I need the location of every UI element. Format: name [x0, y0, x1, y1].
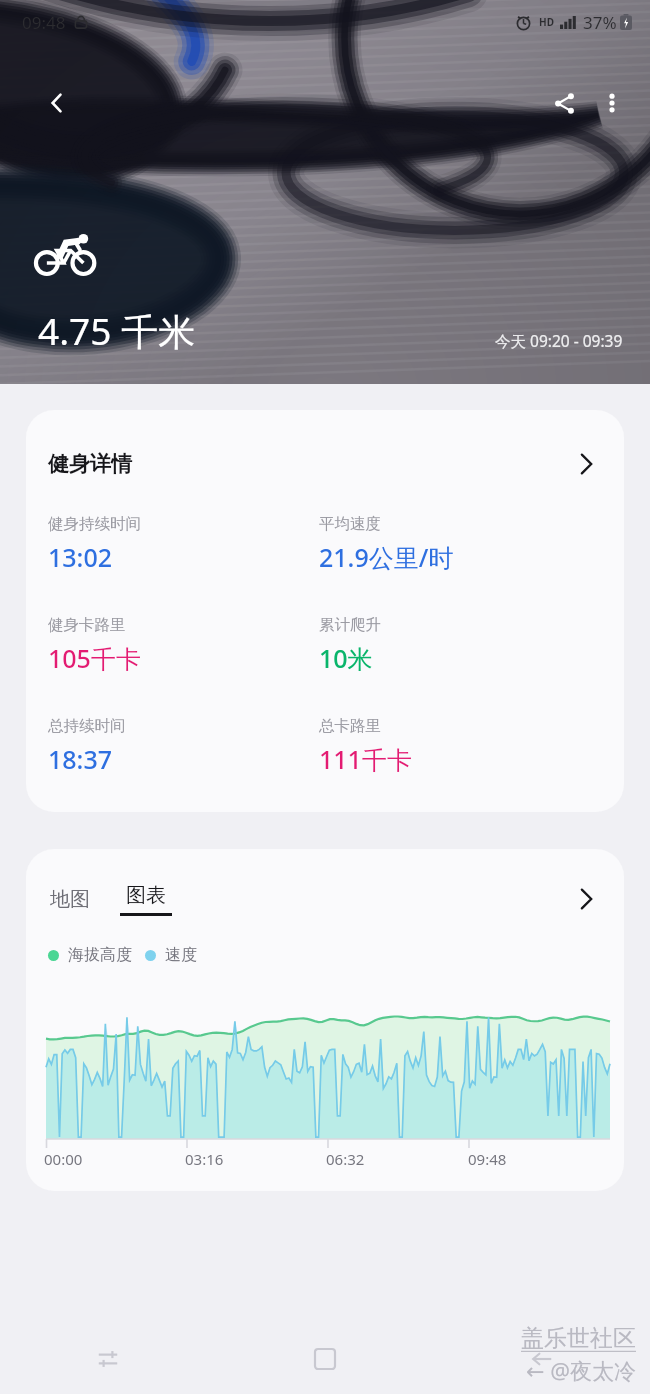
staticText: 健身卡路里	[48, 615, 126, 635]
staticText: 105千卡	[48, 641, 141, 675]
staticText: 06:32	[326, 1149, 468, 1169]
staticText: ← @夜太冷	[526, 1355, 636, 1385]
staticText: 10米	[319, 641, 373, 675]
staticText: 09:48	[468, 1149, 610, 1169]
staticText: 健身详情	[48, 451, 132, 477]
button[interactable]: Open fitness details	[566, 444, 606, 484]
button[interactable]: More options	[588, 79, 636, 127]
staticText: 111千卡	[319, 742, 412, 776]
staticText: 总持续时间	[48, 716, 126, 736]
staticText: 海拔高度	[68, 945, 132, 965]
staticText: 00:00	[44, 1149, 185, 1169]
staticText: 03:16	[185, 1149, 326, 1169]
button[interactable]: Back	[433, 1324, 650, 1394]
staticText: 09:48	[22, 11, 66, 34]
button[interactable]: Home	[216, 1324, 433, 1394]
staticText: 21.9公里/时	[319, 540, 454, 574]
staticText: 总卡路里	[319, 716, 381, 736]
staticText: 速度	[165, 945, 197, 965]
staticText: 4.75 千米	[38, 305, 196, 356]
staticText: 37%	[583, 11, 617, 34]
staticText: 13:02	[48, 540, 113, 574]
staticText: 健身持续时间	[48, 514, 141, 534]
staticText: 盖乐世社区	[521, 1324, 636, 1353]
staticText: 累计爬升	[319, 615, 381, 635]
staticText: 图表	[126, 883, 166, 908]
staticText: 平均速度	[319, 514, 381, 534]
button[interactable]: Open chart	[566, 879, 606, 919]
button[interactable]: 地图	[48, 887, 92, 912]
staticText: HD	[539, 15, 554, 29]
staticText: 地图	[50, 887, 90, 912]
button[interactable]: 健身详情	[26, 410, 624, 812]
button[interactable]: Back	[33, 79, 81, 127]
staticText: 18:37	[48, 742, 113, 776]
button[interactable]: 地图	[26, 849, 624, 1191]
staticText: 今天 09:20 - 09:39	[495, 330, 623, 351]
button[interactable]: 图表	[118, 883, 174, 916]
button[interactable]: Share	[540, 79, 588, 127]
